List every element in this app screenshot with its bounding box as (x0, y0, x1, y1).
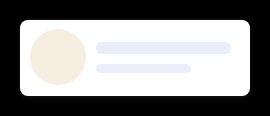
button[interactable]: Loading item (20, 20, 250, 96)
